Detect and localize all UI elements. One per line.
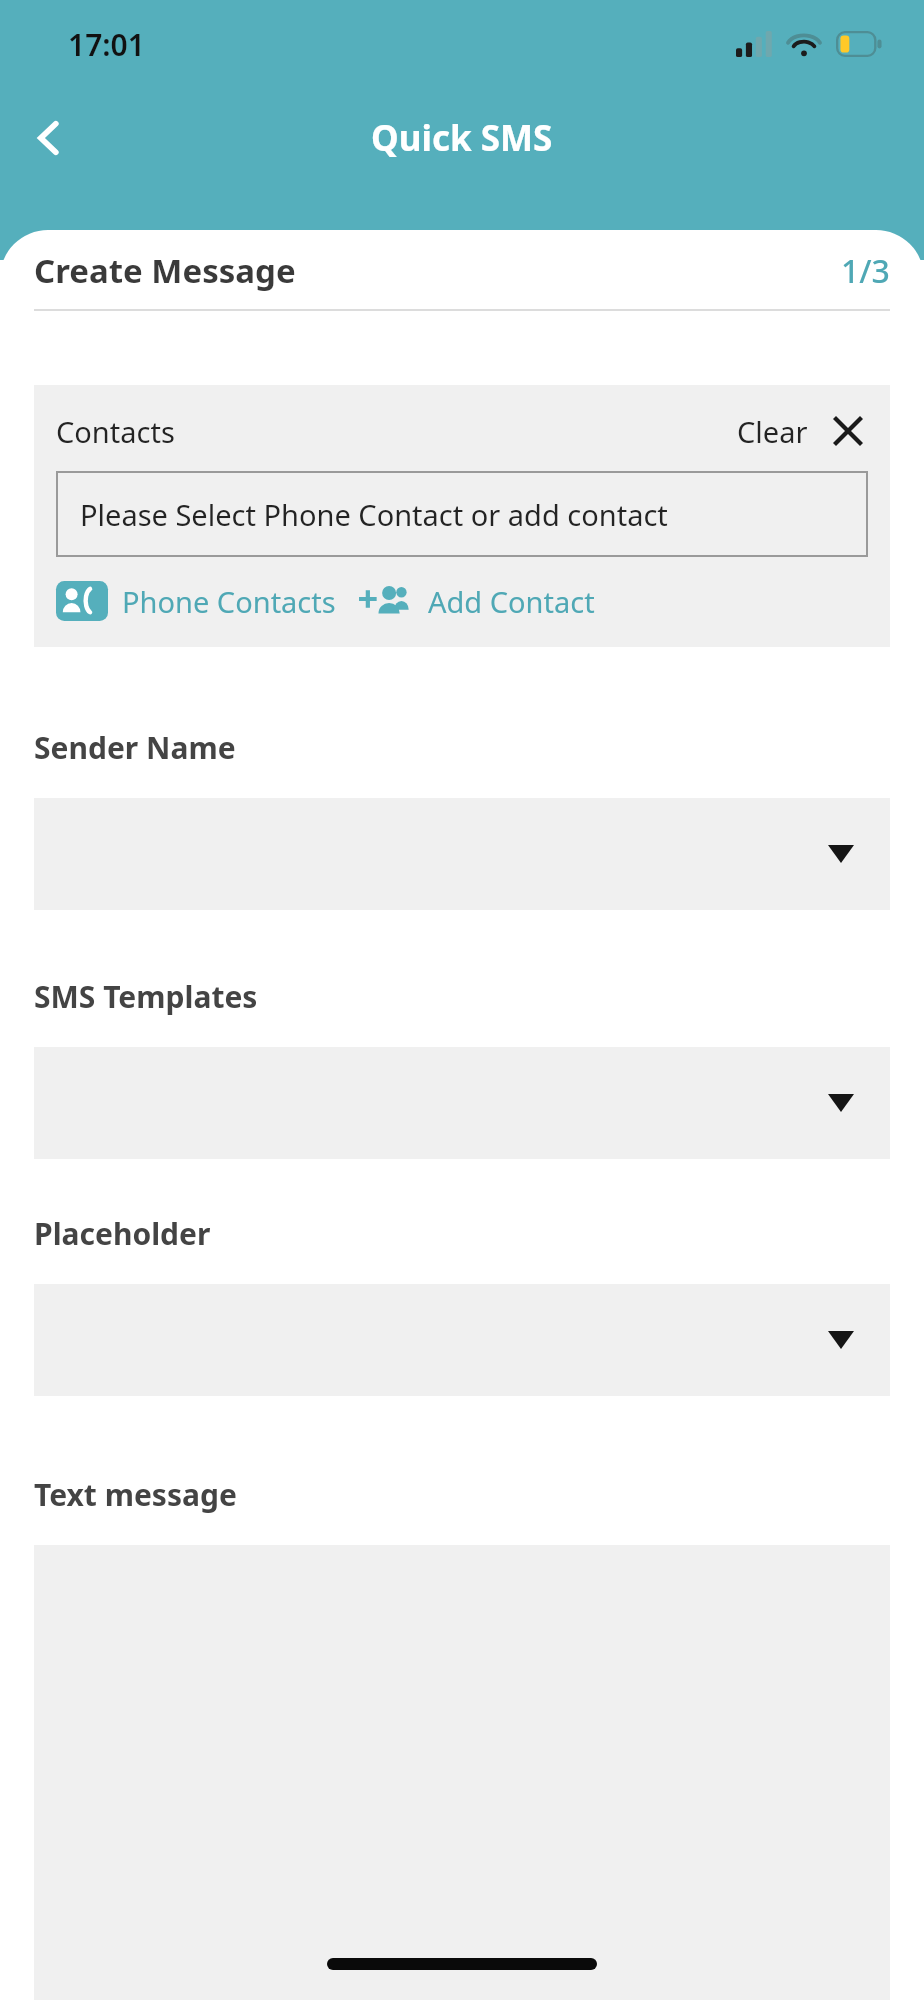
staticText: Placeholder [34,1213,211,1254]
staticText: 17:01 [68,24,145,65]
staticText: Clear [737,412,808,451]
staticText: SMS Templates [34,976,258,1017]
staticText: Phone Contacts [122,582,336,621]
button[interactable]: Add Contact [360,581,595,621]
button[interactable]: Clear [737,411,868,451]
staticText: Text message [34,1474,237,1515]
button[interactable]: Placeholder [34,1284,890,1396]
staticText: 1/3 [841,249,890,293]
button[interactable]: SMS Templates [34,1047,890,1159]
staticText: Add Contact [428,582,595,621]
staticText: Sender Name [34,727,236,768]
staticText: Create Message [34,248,296,293]
button[interactable]: Sender Name [34,798,890,910]
staticText: Quick SMS [371,114,553,162]
button[interactable]: Back [18,108,80,168]
button[interactable]: Please Select Phone Contact or add conta… [56,471,868,557]
button[interactable] [34,1545,890,2000]
staticText: Contacts [56,412,175,451]
staticText: Please Select Phone Contact or add conta… [80,495,668,534]
button[interactable]: Phone Contacts [56,581,336,621]
